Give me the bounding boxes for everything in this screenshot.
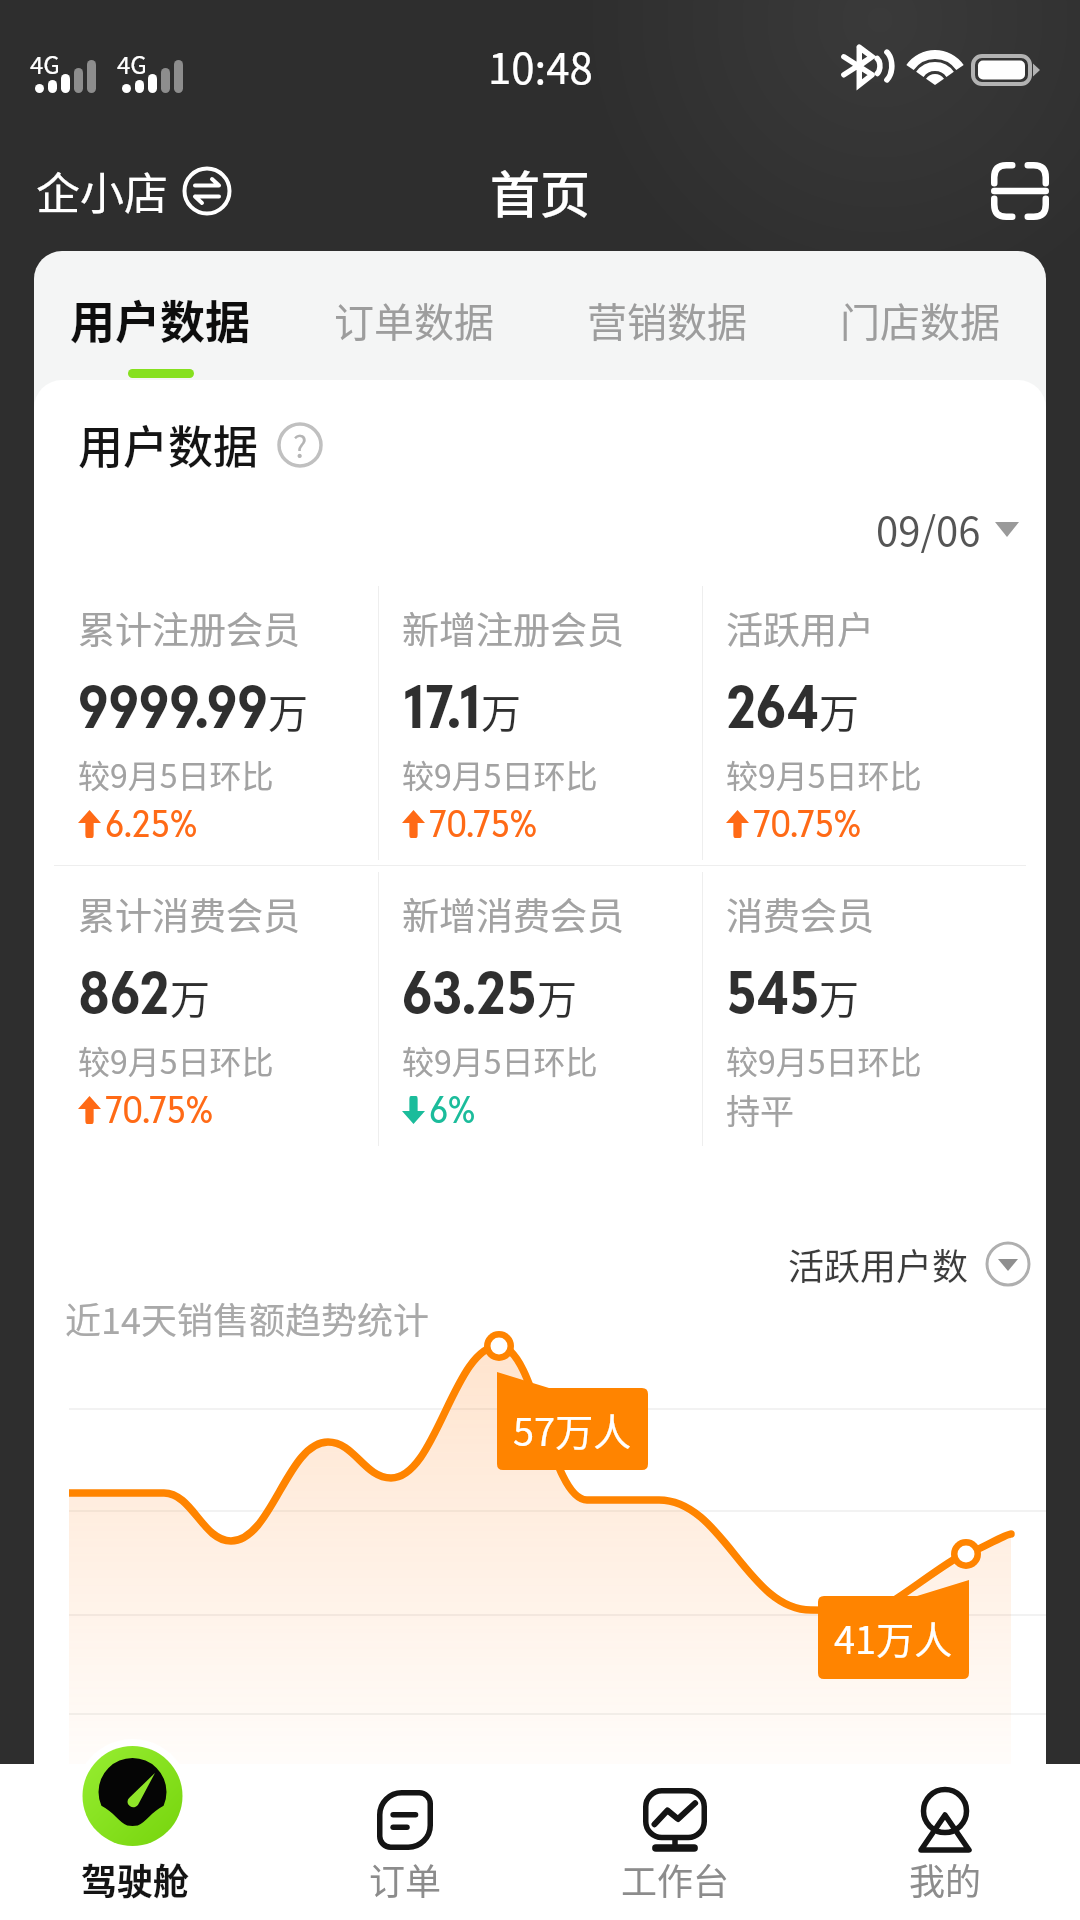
staticText: 57万人 bbox=[513, 1402, 632, 1457]
staticText: 门店数据 bbox=[840, 291, 1000, 349]
staticText: 累计注册会员 bbox=[78, 601, 300, 655]
staticText: 6.25% bbox=[105, 799, 198, 848]
staticText: 近14天销售额趋势统计 bbox=[65, 1292, 429, 1344]
button[interactable]: 消费会员 bbox=[726, 866, 1026, 1151]
staticText: 工作台 bbox=[621, 1853, 730, 1905]
staticText: 较9月5日环比 bbox=[402, 751, 598, 797]
staticText: 6% bbox=[429, 1085, 476, 1134]
staticText: 用户数据 bbox=[78, 412, 259, 477]
staticText: 862 bbox=[78, 954, 170, 1031]
staticText: 企小店 bbox=[36, 159, 168, 223]
staticText: 70.75% bbox=[753, 799, 862, 848]
button[interactable]: 活跃用户 bbox=[726, 580, 1026, 865]
button[interactable]: 用户数据 bbox=[34, 251, 287, 380]
staticText: 万 bbox=[170, 968, 210, 1026]
button[interactable]: 工作台 bbox=[540, 1764, 810, 1920]
button[interactable]: 营销数据 bbox=[540, 251, 793, 380]
button[interactable]: 新增注册会员 bbox=[402, 580, 702, 865]
staticText: 万 bbox=[268, 682, 308, 740]
staticText: 41万人 bbox=[834, 1610, 953, 1665]
staticText: 我的 bbox=[909, 1853, 982, 1905]
staticText: 万 bbox=[481, 682, 521, 740]
staticText: 63.25 bbox=[402, 954, 537, 1031]
staticText: 用户数据 bbox=[70, 287, 251, 352]
staticText: 万 bbox=[819, 682, 859, 740]
button[interactable]: Scan bbox=[978, 149, 1062, 233]
staticText: 持平 bbox=[726, 1085, 794, 1134]
staticText: 活跃用户 bbox=[726, 601, 874, 655]
staticText: 万 bbox=[819, 968, 859, 1026]
staticText: 营销数据 bbox=[587, 291, 747, 349]
staticText: 70.75% bbox=[429, 799, 538, 848]
button[interactable]: 09/06 bbox=[876, 500, 1019, 558]
button[interactable]: 驾驶舱 bbox=[0, 1764, 270, 1920]
button[interactable]: 我的 bbox=[810, 1764, 1080, 1920]
staticText: 新增注册会员 bbox=[402, 601, 624, 655]
button[interactable]: 企小店 bbox=[36, 159, 232, 223]
staticText: 264 bbox=[726, 668, 819, 745]
staticText: 消费会员 bbox=[726, 887, 874, 941]
button[interactable]: 订单 bbox=[270, 1764, 540, 1920]
staticText: 9999.99 bbox=[78, 668, 268, 745]
button[interactable]: 门店数据 bbox=[793, 251, 1046, 380]
staticText: 较9月5日环比 bbox=[726, 751, 922, 797]
staticText: 新增消费会员 bbox=[402, 887, 624, 941]
staticText: 较9月5日环比 bbox=[726, 1037, 922, 1083]
staticText: 较9月5日环比 bbox=[78, 751, 274, 797]
staticText: 活跃用户数 bbox=[788, 1238, 969, 1290]
button[interactable]: 累计注册会员 bbox=[78, 580, 378, 865]
staticText: 70.75% bbox=[105, 1085, 214, 1134]
staticText: 较9月5日环比 bbox=[402, 1037, 598, 1083]
staticText: 4G bbox=[117, 46, 147, 81]
staticText: 4G bbox=[30, 46, 60, 81]
staticText: 545 bbox=[726, 954, 819, 1031]
button[interactable]: 订单数据 bbox=[287, 251, 540, 380]
staticText: 万 bbox=[537, 968, 577, 1026]
staticText: 订单 bbox=[369, 1853, 442, 1905]
staticText: 首页 bbox=[490, 155, 590, 227]
staticText: 较9月5日环比 bbox=[78, 1037, 274, 1083]
button[interactable]: 新增消费会员 bbox=[402, 866, 702, 1151]
staticText: ? bbox=[293, 423, 308, 466]
button[interactable]: 用户数据 bbox=[78, 412, 323, 477]
staticText: 10:48 bbox=[488, 35, 593, 96]
staticText: 累计消费会员 bbox=[78, 887, 300, 941]
button[interactable]: 累计消费会员 bbox=[78, 866, 378, 1151]
staticText: 驾驶舱 bbox=[81, 1853, 190, 1905]
staticText: 09/06 bbox=[876, 500, 981, 558]
other: Help bbox=[277, 422, 323, 468]
button[interactable]: 活跃用户数 bbox=[788, 1238, 1031, 1290]
staticText: 17.1 bbox=[402, 668, 481, 745]
staticText: 订单数据 bbox=[334, 291, 494, 349]
